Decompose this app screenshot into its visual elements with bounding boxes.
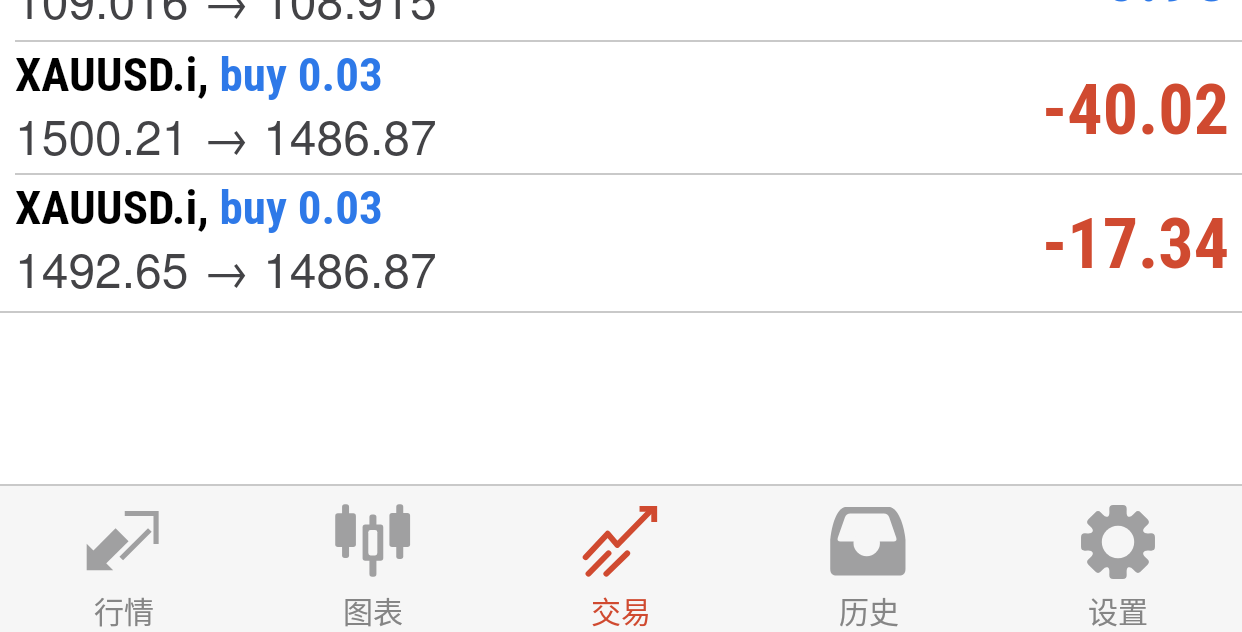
staticText: 1500.21 → 1486.87 bbox=[15, 100, 437, 169]
staticText: +0.93 bbox=[1070, 0, 1230, 18]
button[interactable]: Charts bbox=[249, 486, 497, 632]
button[interactable]: Settings bbox=[994, 486, 1242, 632]
button[interactable]: XAUUSD.i, buy 0.03 bbox=[0, 42, 1242, 173]
staticText: 109.016 → 108.915 bbox=[15, 0, 437, 33]
staticText: 行情 bbox=[94, 588, 154, 631]
button[interactable]: History bbox=[745, 486, 993, 632]
button[interactable]: USDJPY.i, sell 0.10 bbox=[0, 0, 1242, 40]
staticText: 交易 bbox=[591, 588, 651, 631]
staticText: 图表 bbox=[343, 588, 403, 631]
staticText: 历史 bbox=[839, 588, 899, 631]
staticText: 1492.65 → 1486.87 bbox=[15, 233, 437, 302]
button[interactable]: XAUUSD.i, buy 0.03 bbox=[0, 175, 1242, 311]
button[interactable]: Trade bbox=[497, 486, 745, 632]
staticText: -17.34 bbox=[1042, 203, 1230, 285]
staticText: 设置 bbox=[1088, 588, 1148, 631]
button[interactable]: Quotes bbox=[0, 486, 248, 632]
staticText: XAUUSD.i, buy 0.03 bbox=[15, 180, 383, 235]
staticText: -40.02 bbox=[1042, 69, 1230, 151]
staticText: XAUUSD.i, buy 0.03 bbox=[15, 47, 383, 102]
